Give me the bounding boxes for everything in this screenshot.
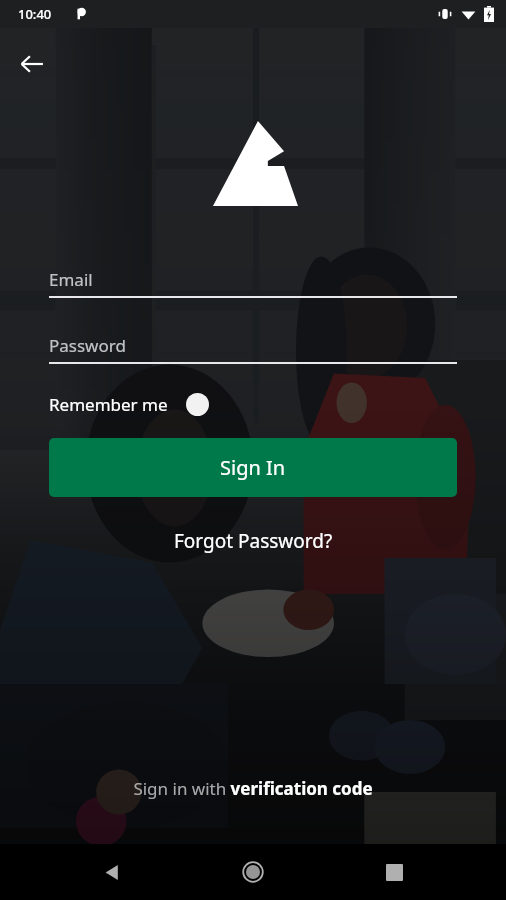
button[interactable]: Email — [49, 262, 457, 296]
staticText: Sign In — [220, 454, 286, 481]
staticText: 10:40 — [18, 5, 52, 23]
button[interactable]: Forgot Password? — [49, 523, 457, 559]
staticText: Sign in with verification code — [133, 777, 373, 800]
button[interactable]: Home — [229, 848, 277, 896]
button[interactable]: Back — [88, 848, 136, 896]
staticText: Email — [49, 268, 93, 291]
button[interactable]: Recent apps — [370, 848, 418, 896]
button[interactable]: Remember me — [49, 393, 209, 416]
button[interactable]: Back — [8, 40, 56, 88]
staticText: Forgot Password? — [174, 528, 333, 554]
button[interactable]: Sign in with verification code — [0, 770, 506, 806]
button[interactable]: Sign In — [49, 438, 457, 497]
button[interactable]: Password — [49, 328, 457, 362]
staticText: Remember me — [49, 393, 168, 416]
staticText: Password — [49, 334, 126, 357]
